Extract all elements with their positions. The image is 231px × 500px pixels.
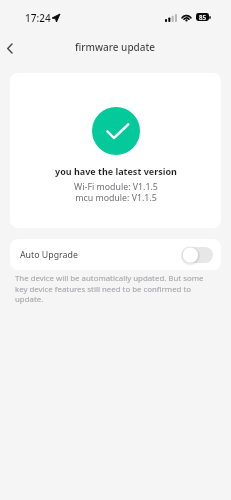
button[interactable]: Auto Upgrade toggle xyxy=(182,247,213,263)
staticText: 17:24 xyxy=(25,11,51,25)
staticText: Auto Upgrade xyxy=(20,249,78,261)
button[interactable]: Back xyxy=(0,34,22,64)
staticText: firmware update xyxy=(75,40,156,54)
staticText: The device will be automatically updated… xyxy=(15,273,211,304)
button[interactable]: Auto Upgrade xyxy=(10,239,221,270)
staticText: 85 xyxy=(199,13,207,21)
staticText: Wi-Fi module: V1.1.5 mcu module: V1.1.5 xyxy=(74,181,158,203)
staticText: you have the latest version xyxy=(55,165,177,177)
